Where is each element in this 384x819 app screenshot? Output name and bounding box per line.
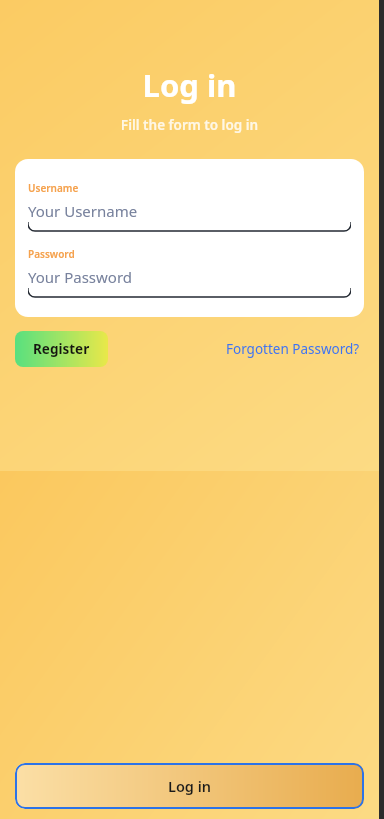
button[interactable]: Your Username bbox=[28, 200, 351, 233]
staticText: Fill the form to log in bbox=[0, 116, 379, 134]
staticText: Username bbox=[28, 181, 79, 195]
staticText: Forgotten Password? bbox=[226, 340, 360, 358]
button[interactable]: Your Password bbox=[28, 266, 351, 299]
staticText: Your Username bbox=[28, 201, 138, 221]
staticText: Password bbox=[28, 247, 75, 261]
staticText: Log in bbox=[0, 64, 379, 106]
staticText: Log in bbox=[168, 776, 212, 796]
staticText: Register bbox=[33, 340, 90, 358]
button[interactable]: Log in bbox=[15, 763, 364, 809]
button[interactable]: Forgotten Password? bbox=[222, 336, 364, 362]
staticText: Your Password bbox=[28, 267, 133, 287]
button[interactable]: Register bbox=[15, 331, 108, 367]
